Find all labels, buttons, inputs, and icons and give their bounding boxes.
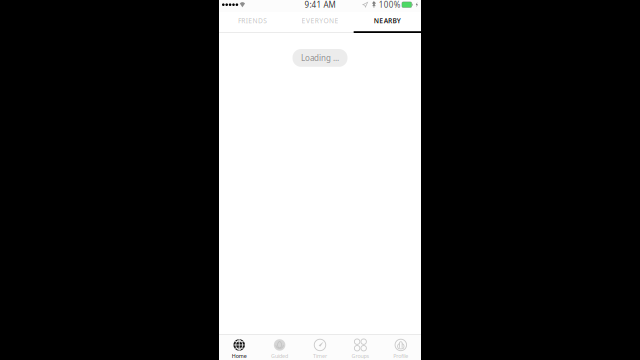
staticText: Profile	[393, 352, 408, 359]
staticText: Guided	[271, 352, 288, 359]
staticText: FRIENDS	[238, 16, 267, 25]
button[interactable]: Timer	[300, 335, 340, 360]
button[interactable]: EVERYONE	[286, 12, 354, 33]
staticText: EVERYONE	[302, 16, 338, 25]
button[interactable]: Home	[219, 335, 259, 360]
staticText: 100%	[379, 0, 401, 10]
button[interactable]: Groups	[340, 335, 381, 360]
staticText: 9:41 AM	[304, 0, 335, 10]
button[interactable]: NEARBY	[354, 12, 421, 33]
button[interactable]: Profile	[381, 335, 421, 360]
staticText: Home	[232, 352, 247, 359]
staticText: Timer	[313, 352, 327, 359]
staticText: NEARBY	[374, 16, 401, 25]
button[interactable]: Guided	[259, 335, 300, 360]
button[interactable]: FRIENDS	[219, 12, 286, 33]
staticText: Loading ...	[301, 53, 339, 63]
staticText: Groups	[351, 352, 369, 359]
